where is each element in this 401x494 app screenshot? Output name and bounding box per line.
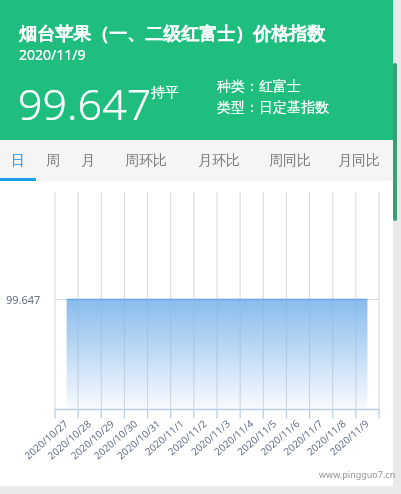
staticText: 持平 xyxy=(151,84,179,102)
button[interactable]: 月同比 xyxy=(328,140,390,181)
button[interactable]: 周同比 xyxy=(252,140,328,181)
button[interactable]: 周环比 xyxy=(106,140,186,181)
staticText: 周 xyxy=(46,152,60,170)
staticText: 周同比 xyxy=(269,152,311,170)
staticText: 周环比 xyxy=(125,152,167,170)
staticText: 类型：日定基指数 xyxy=(217,99,329,117)
staticText: 99.647 xyxy=(18,74,152,133)
button[interactable]: 日 xyxy=(0,140,36,181)
staticText: 种类：红富士 xyxy=(217,78,301,96)
button[interactable]: 月环比 xyxy=(186,140,252,181)
staticText: 月同比 xyxy=(338,152,380,170)
staticText: 日 xyxy=(11,152,25,170)
staticText: www.pingguo7.cn xyxy=(319,468,396,480)
staticText: 月 xyxy=(81,152,95,170)
staticText: 烟台苹果（一、二级红富士）价格指数 xyxy=(19,23,325,46)
staticText: 2020/11/9 xyxy=(19,45,86,64)
button[interactable]: 月 xyxy=(70,140,106,181)
button[interactable]: 周 xyxy=(36,140,70,181)
staticText: 月环比 xyxy=(198,152,240,170)
